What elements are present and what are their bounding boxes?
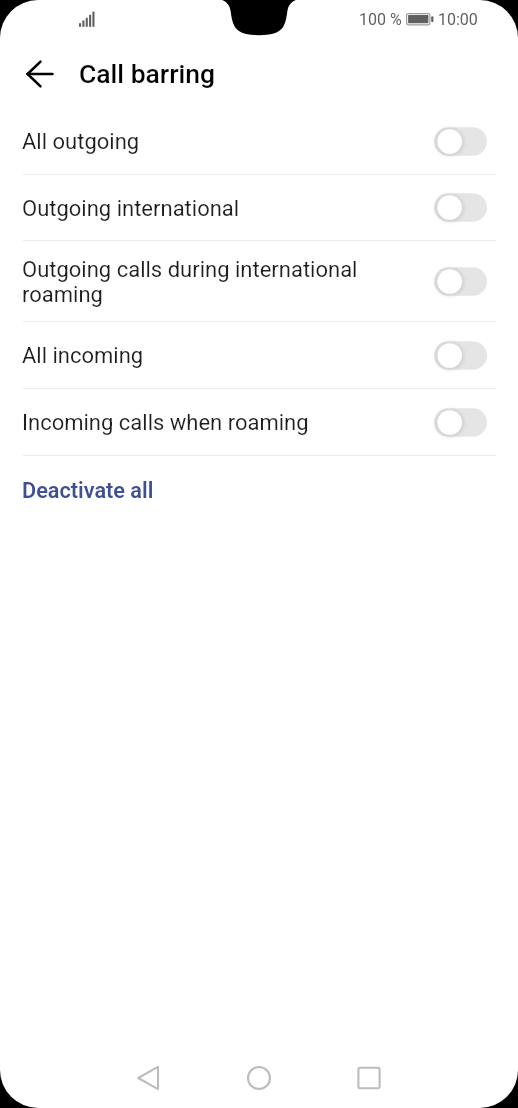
- button[interactable]: Incoming calls when roaming: [0, 389, 518, 455]
- staticText: All incoming: [22, 343, 412, 369]
- staticText: All outgoing: [22, 129, 412, 155]
- button[interactable]: Back: [16, 50, 64, 98]
- staticText: Call barring: [79, 58, 216, 89]
- button[interactable]: Home: [221, 1052, 297, 1104]
- staticText: Deactivate all: [22, 478, 154, 503]
- button[interactable]: Toggle: [434, 341, 487, 370]
- button[interactable]: All outgoing: [0, 108, 518, 174]
- button[interactable]: Toggle: [434, 267, 487, 296]
- staticText: Outgoing calls during international roam…: [22, 257, 412, 308]
- button[interactable]: Outgoing international: [0, 175, 518, 240]
- button[interactable]: Back: [110, 1052, 186, 1104]
- button[interactable]: Toggle: [434, 408, 487, 437]
- button[interactable]: All incoming: [0, 322, 518, 388]
- button[interactable]: Deactivate all: [0, 456, 518, 518]
- staticText: Incoming calls when roaming: [22, 410, 412, 436]
- staticText: Outgoing international: [22, 196, 412, 222]
- staticText: 10:00: [438, 10, 478, 29]
- button[interactable]: Recents: [331, 1052, 407, 1104]
- staticText: 100 %: [359, 10, 402, 29]
- button[interactable]: Outgoing calls during international roam…: [0, 241, 518, 321]
- button[interactable]: Toggle: [434, 127, 487, 156]
- button[interactable]: Toggle: [434, 193, 487, 222]
